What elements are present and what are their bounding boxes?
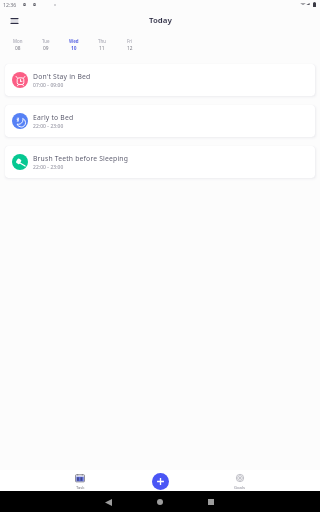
button[interactable]: Wed (60, 35, 88, 52)
button[interactable]: Recent apps (201, 495, 221, 509)
staticText: 12 (127, 45, 133, 52)
button[interactable]: Home (150, 495, 170, 509)
staticText: 07:00 - 09:00 (33, 82, 64, 89)
staticText: Fri (127, 38, 133, 44)
staticText: Goals (234, 485, 246, 491)
button[interactable]: Fri (116, 35, 144, 52)
button[interactable]: Tue (32, 35, 60, 52)
staticText: Today (149, 15, 172, 26)
staticText: 22:00 - 23:00 (33, 123, 64, 130)
button[interactable]: Back (98, 495, 118, 509)
button[interactable]: Thu (88, 35, 116, 52)
button[interactable]: Early to Bed (5, 105, 315, 137)
staticText: Thu (98, 38, 106, 44)
button[interactable]: Goals (228, 470, 252, 491)
button[interactable]: Brush Teeth before Sleeping (5, 146, 315, 178)
staticText: 11 (99, 45, 105, 52)
staticText: 09 (43, 45, 49, 52)
staticText: 12:36 (3, 1, 17, 8)
staticText: Wed (69, 38, 79, 44)
staticText: Mon (13, 38, 23, 44)
staticText: Brush Teeth before Sleeping (33, 154, 129, 163)
staticText: 22:00 - 23:00 (33, 164, 64, 171)
staticText: 08 (15, 45, 21, 52)
button[interactable]: Don't Stay in Bed (5, 64, 315, 96)
staticText: Don't Stay in Bed (33, 72, 91, 81)
staticText: 10 (71, 45, 77, 52)
staticText: Tue (42, 38, 50, 44)
button[interactable]: Add new task (152, 473, 169, 490)
button[interactable]: Mon (4, 35, 32, 52)
staticText: Early to Bed (33, 113, 74, 122)
staticText: Task (76, 485, 85, 491)
button[interactable]: Open navigation menu (6, 13, 22, 29)
button[interactable]: Task (68, 470, 92, 491)
